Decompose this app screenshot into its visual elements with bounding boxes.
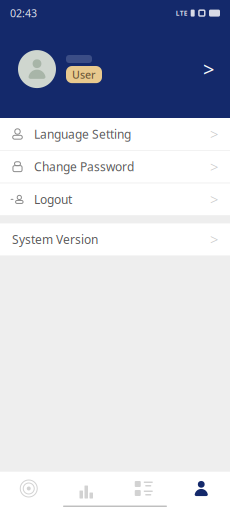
staticText: Change Password — [34, 159, 134, 175]
button[interactable]: Profile — [172, 472, 230, 504]
button[interactable]: Change Password — [0, 151, 230, 183]
staticText: > — [210, 230, 218, 249]
button[interactable]: User — [0, 50, 230, 88]
staticText: > — [210, 157, 218, 176]
staticText: > — [203, 56, 214, 82]
button[interactable]: Language Setting — [0, 118, 230, 150]
button[interactable]: System Version — [0, 223, 230, 255]
staticText: LTE — [176, 9, 188, 18]
button[interactable]: List — [115, 472, 172, 504]
button[interactable]: Logout — [0, 183, 230, 215]
button[interactable]: Statistics — [57, 472, 115, 504]
staticText: > — [210, 190, 218, 209]
staticText: 02:43 — [10, 6, 37, 20]
staticText: Logout — [34, 191, 72, 207]
staticText: User — [72, 67, 96, 82]
staticText: System Version — [12, 231, 98, 247]
button[interactable]: Dashboard — [0, 472, 57, 504]
staticText: > — [210, 124, 218, 144]
staticText: Language Setting — [34, 126, 131, 142]
